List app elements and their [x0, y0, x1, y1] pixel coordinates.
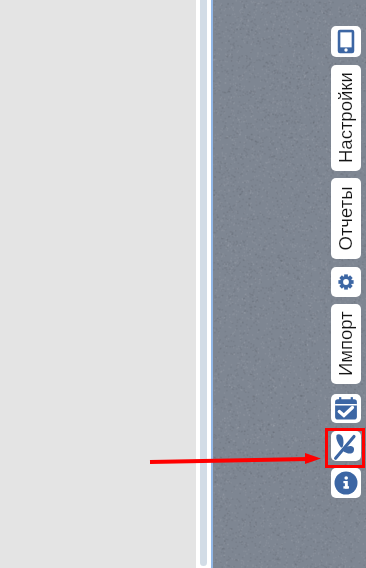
button[interactable]: Info [331, 468, 361, 498]
button[interactable]: Settings [331, 267, 361, 297]
button[interactable]: Tasks [331, 394, 361, 423]
button[interactable]: Cut [331, 431, 361, 461]
staticText: Отчеты [334, 186, 355, 250]
button[interactable]: Device [331, 26, 361, 57]
button[interactable]: Настройки [331, 65, 361, 171]
staticText: Настройки [335, 72, 356, 163]
staticText: Импорт [335, 311, 356, 376]
button[interactable]: Импорт [331, 304, 361, 384]
button[interactable]: Отчеты [331, 178, 361, 259]
button[interactable]: Scroll [200, 0, 207, 566]
